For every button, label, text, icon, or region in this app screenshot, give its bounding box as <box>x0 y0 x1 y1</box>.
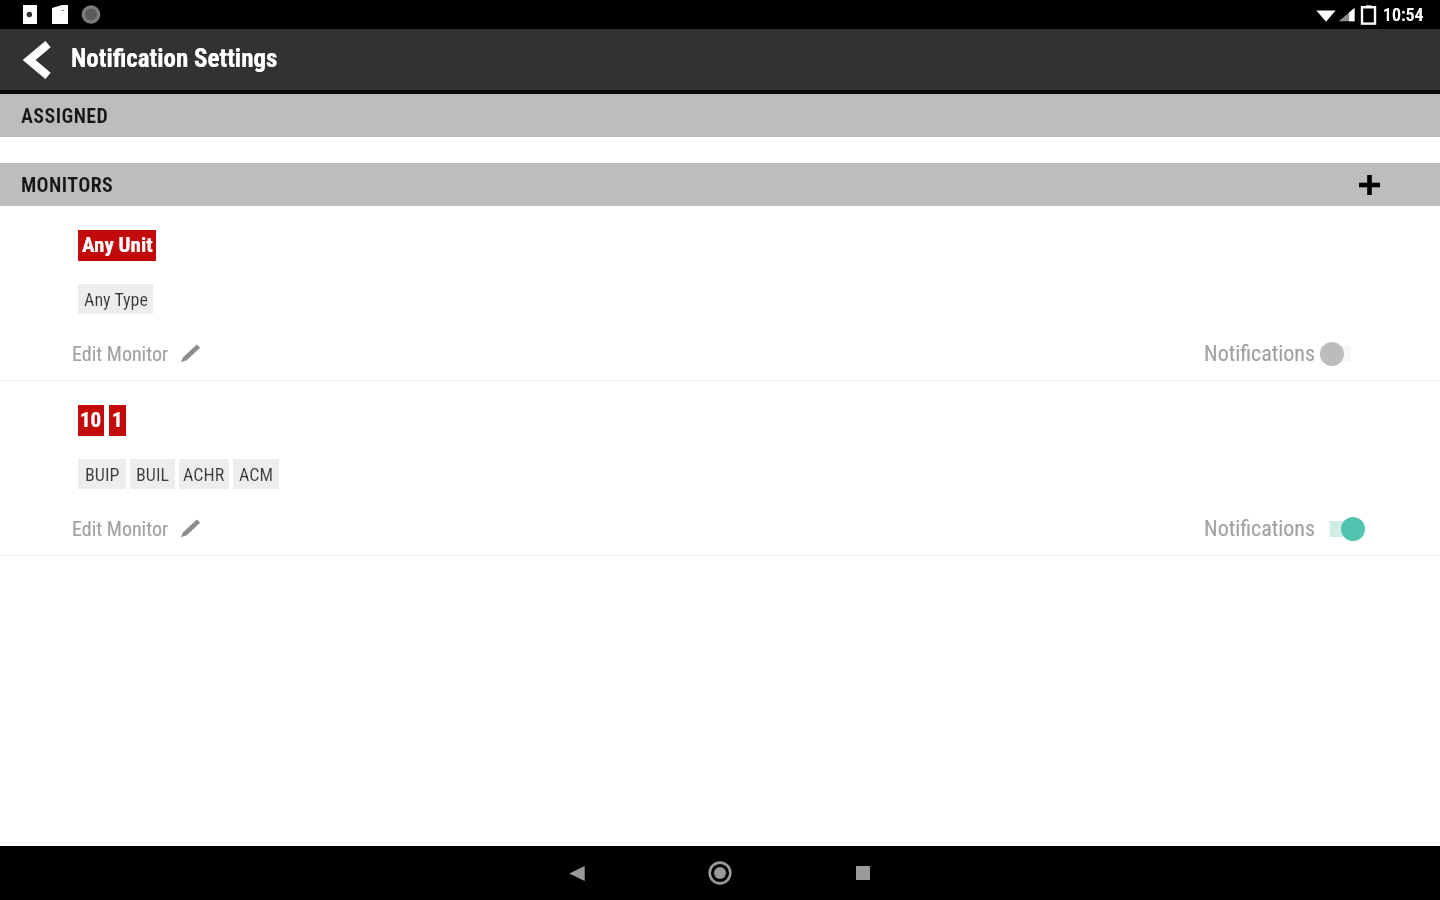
button[interactable]: 10 <box>0 381 1440 555</box>
staticText: 10:54 <box>1383 4 1424 25</box>
staticText: Notifications <box>1204 341 1316 367</box>
button[interactable]: Any Unit <box>0 206 1440 380</box>
staticText: Edit Monitor <box>72 342 169 365</box>
staticText: MONITORS <box>21 173 114 196</box>
staticText: Notification Settings <box>71 44 278 73</box>
button[interactable]: Home <box>670 846 770 900</box>
staticText: ACM <box>239 464 274 485</box>
button[interactable]: Edit Monitor <box>62 517 201 549</box>
staticText: Any Type <box>84 289 148 310</box>
button[interactable]: Recent apps <box>813 846 913 900</box>
staticText: Any Unit <box>82 233 153 258</box>
button[interactable]: Back <box>6 29 67 90</box>
staticText: BUIL <box>136 464 169 485</box>
button[interactable]: Back <box>527 846 627 900</box>
staticText: 10 <box>80 408 102 433</box>
staticText: Edit Monitor <box>72 517 169 540</box>
staticText: ASSIGNED <box>21 104 109 127</box>
staticText: Notifications <box>1204 516 1316 542</box>
staticText: ACHR <box>183 464 225 485</box>
staticText: BUIP <box>85 464 120 485</box>
button[interactable]: Add monitor <box>1341 163 1397 206</box>
staticText: 1 <box>112 408 123 433</box>
button[interactable]: Notifications <box>1204 516 1376 551</box>
button[interactable]: Notifications <box>1204 341 1376 376</box>
button[interactable]: Edit Monitor <box>62 342 201 374</box>
